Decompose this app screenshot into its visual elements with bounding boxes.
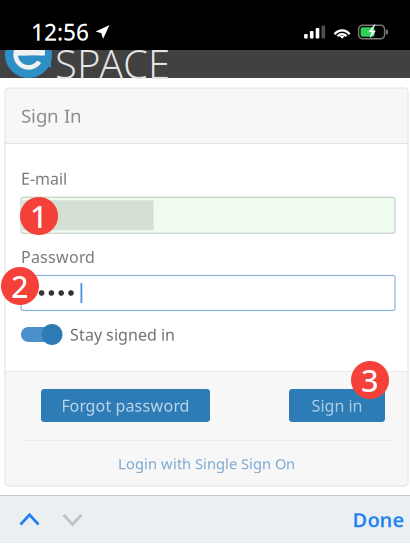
staticText: Sign In [21, 103, 82, 128]
staticText: Done [352, 506, 404, 533]
button[interactable]: Next field [54, 496, 91, 543]
staticText: Login with Single Sign On [118, 454, 295, 473]
button[interactable]: Forgot password [41, 389, 210, 422]
staticText: 3 [361, 360, 379, 400]
button[interactable]: Sign in [289, 389, 385, 422]
staticText: 1 [30, 196, 48, 236]
staticText: E-mail [21, 168, 67, 189]
staticText: SPACE [55, 37, 170, 90]
staticText: Stay signed in [70, 324, 175, 345]
button[interactable]: Login with Single Sign On [5, 441, 408, 486]
staticText: Password [21, 246, 95, 267]
staticText: 12:56 [31, 17, 89, 47]
button[interactable]: Previous field [5, 496, 54, 543]
button[interactable]: Done [347, 496, 410, 543]
staticText: Sign in [311, 395, 362, 416]
button[interactable]: Stay signed in [21, 323, 175, 345]
staticText: Forgot password [61, 395, 189, 416]
staticText: 2 [11, 266, 29, 306]
